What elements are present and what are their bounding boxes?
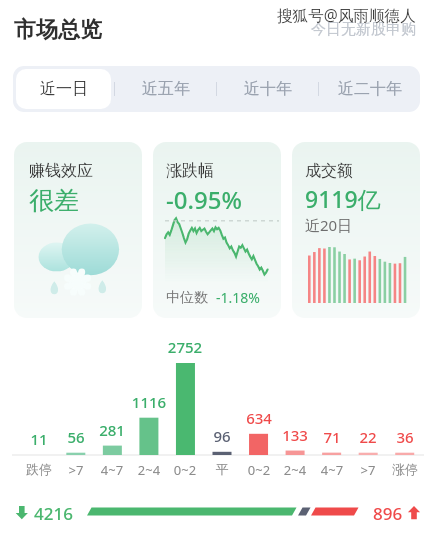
- staticText: >7: [52, 461, 100, 479]
- staticText: 36: [381, 427, 429, 447]
- staticText: 很差: [29, 185, 79, 216]
- staticText: 近十年: [244, 79, 292, 99]
- staticText: 71: [308, 427, 356, 447]
- staticText: 近20日: [305, 215, 353, 235]
- staticText: 4~7: [88, 461, 136, 479]
- staticText: 近二十年: [338, 79, 402, 99]
- staticText: 281: [88, 420, 136, 440]
- button[interactable]: 近一日: [16, 69, 111, 109]
- staticText: >7: [344, 461, 392, 479]
- button[interactable]: 赚钱效应: [14, 142, 142, 318]
- button[interactable]: 近二十年: [319, 66, 420, 112]
- staticText: 涨停: [381, 461, 429, 477]
- staticText: 2~4: [271, 461, 319, 479]
- staticText: 近一日: [40, 79, 88, 99]
- button[interactable]: 近五年: [115, 66, 216, 112]
- staticText: 0~2: [161, 461, 209, 479]
- staticText: 1116: [125, 392, 173, 412]
- staticText: 跌停: [15, 461, 63, 477]
- button[interactable]: 成交额: [292, 142, 420, 318]
- staticText: 搜狐号@风雨顺德人: [277, 4, 416, 25]
- staticText: 涨跌幅: [166, 161, 214, 181]
- staticText: 896: [373, 502, 403, 525]
- staticText: 平: [198, 461, 246, 477]
- button[interactable]: 涨跌幅: [153, 142, 281, 318]
- staticText: 中位数: [166, 289, 208, 307]
- staticText: 634: [235, 408, 283, 428]
- staticText: 成交额: [305, 161, 353, 181]
- staticText: 133: [271, 425, 319, 445]
- staticText: 赚钱效应: [29, 161, 93, 181]
- staticText: 近五年: [142, 79, 190, 99]
- staticText: 2~4: [125, 461, 173, 479]
- staticText: 96: [198, 426, 246, 446]
- staticText: 22: [344, 427, 392, 447]
- staticText: -1.18%: [216, 288, 260, 307]
- staticText: 4216: [34, 502, 73, 525]
- staticText: 11: [15, 429, 63, 449]
- button[interactable]: 近十年: [217, 66, 318, 112]
- staticText: 市场总览: [14, 16, 102, 44]
- staticText: 0~2: [235, 461, 283, 479]
- staticText: -0.95%: [166, 183, 242, 216]
- staticText: 2752: [161, 337, 209, 357]
- staticText: 4~7: [308, 461, 356, 479]
- staticText: 今日无新股申购: [311, 20, 416, 39]
- staticText: 56: [52, 427, 100, 447]
- staticText: 9119亿: [305, 183, 381, 214]
